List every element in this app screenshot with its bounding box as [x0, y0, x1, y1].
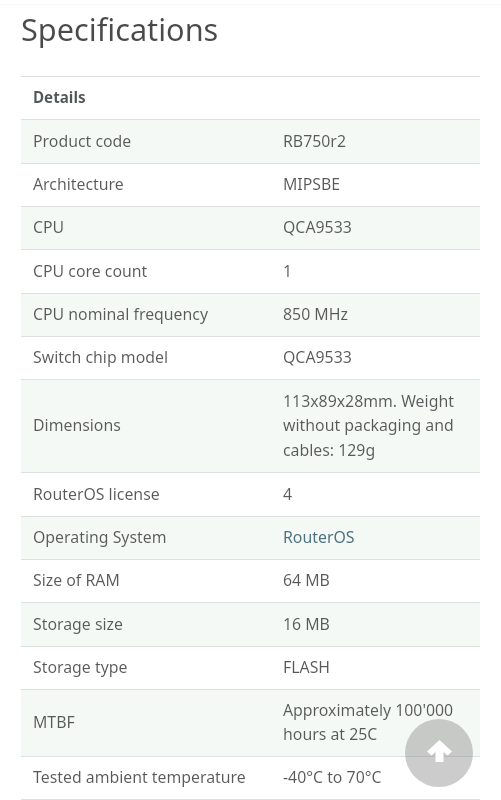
staticText: 64 MB	[283, 569, 330, 591]
staticText: MIPSBE	[283, 173, 341, 195]
staticText: 4	[283, 483, 293, 505]
staticText: RouterOS	[283, 526, 355, 548]
staticText: CPU nominal frequency	[33, 303, 273, 325]
staticText: -40°C to 70°C	[283, 766, 382, 788]
staticText: Dimensions	[33, 414, 273, 436]
staticText: Storage size	[33, 613, 273, 635]
staticText: Architecture	[33, 173, 273, 195]
staticText: Details	[33, 87, 86, 108]
staticText: Storage type	[33, 656, 273, 678]
staticText: Size of RAM	[33, 569, 273, 591]
button[interactable]: MTBF	[21, 690, 480, 756]
staticText: Operating System	[33, 526, 273, 548]
button[interactable]: CPU core count	[21, 250, 480, 293]
button[interactable]: Operating System	[21, 517, 480, 559]
staticText: Specifications	[21, 8, 219, 50]
staticText: Approximately 100'000 hours at 25C	[283, 699, 474, 745]
button[interactable]: RouterOS license	[21, 473, 480, 516]
staticText: 113x89x28mm. Weight without packaging an…	[283, 390, 474, 461]
button[interactable]: Size of RAM	[21, 560, 480, 602]
button[interactable]: Switch chip model	[21, 337, 480, 379]
button[interactable]: Tested ambient temperature	[21, 757, 480, 799]
staticText: Product code	[33, 130, 273, 152]
button[interactable]: CPU nominal frequency	[21, 294, 480, 336]
staticText: CPU	[33, 216, 273, 238]
staticText: MTBF	[33, 711, 273, 733]
button[interactable]: CPU	[21, 207, 480, 249]
button[interactable]: Dimensions	[21, 380, 480, 472]
staticText: 16 MB	[283, 613, 330, 635]
staticText: 1	[283, 260, 293, 282]
button[interactable]: Details	[21, 77, 480, 119]
staticText: FLASH	[283, 656, 331, 678]
staticText: Tested ambient temperature	[33, 766, 273, 788]
button[interactable]: Architecture	[21, 164, 480, 206]
button[interactable]: Storage type	[21, 647, 480, 689]
button[interactable]: Scroll to top	[405, 719, 473, 787]
button[interactable]: Product code	[21, 120, 480, 163]
staticText: RouterOS license	[33, 483, 273, 505]
staticText: RB750r2	[283, 130, 346, 152]
staticText: QCA9533	[283, 216, 352, 238]
staticText: QCA9533	[283, 346, 352, 368]
staticText: Switch chip model	[33, 346, 273, 368]
staticText: 850 MHz	[283, 303, 348, 325]
button[interactable]: Storage size	[21, 603, 480, 646]
staticText: CPU core count	[33, 260, 273, 282]
